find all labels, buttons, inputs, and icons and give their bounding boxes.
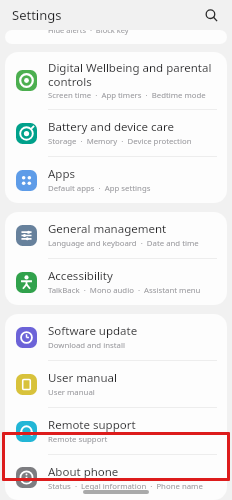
button[interactable]: Remote support: [5, 408, 227, 454]
staticText: Software update: [48, 323, 138, 339]
staticText: Hide alerts · Block key: [48, 30, 129, 35]
staticText: Battery and device care: [48, 119, 175, 135]
button[interactable]: Battery and device care: [5, 110, 227, 156]
staticText: Download and install: [48, 340, 125, 351]
button[interactable]: Apps: [5, 157, 227, 203]
staticText: General management: [48, 221, 167, 237]
staticText: Accessibility: [48, 268, 113, 284]
staticText: About phone: [48, 464, 119, 480]
button[interactable]: Digital Wellbeing and parental controls: [5, 52, 227, 109]
button[interactable]: User manual: [5, 361, 227, 407]
staticText: Settings: [12, 6, 62, 24]
staticText: Remote support: [48, 417, 136, 433]
staticText: Screen time · App timers · Bedtime mode: [48, 90, 206, 101]
staticText: Language and keyboard · Date and time: [48, 238, 199, 249]
staticText: Status · Legal information · Phone name: [48, 481, 203, 491]
button[interactable]: About phone: [5, 455, 227, 500]
button[interactable]: Search: [199, 3, 223, 27]
staticText: User manual: [48, 387, 95, 398]
button[interactable]: General management: [5, 212, 227, 258]
staticText: Default apps · App settings: [48, 183, 151, 194]
staticText: Remote support: [48, 434, 108, 445]
button[interactable]: Accessibility: [5, 259, 227, 305]
staticText: Digital Wellbeing and parental controls: [48, 60, 212, 89]
staticText: User manual: [48, 370, 117, 386]
button[interactable]: Software update: [5, 314, 227, 360]
staticText: Apps: [48, 166, 76, 182]
staticText: TalkBack · Mono audio · Assistant menu: [48, 285, 201, 296]
staticText: Storage · Memory · Device protection: [48, 136, 192, 147]
